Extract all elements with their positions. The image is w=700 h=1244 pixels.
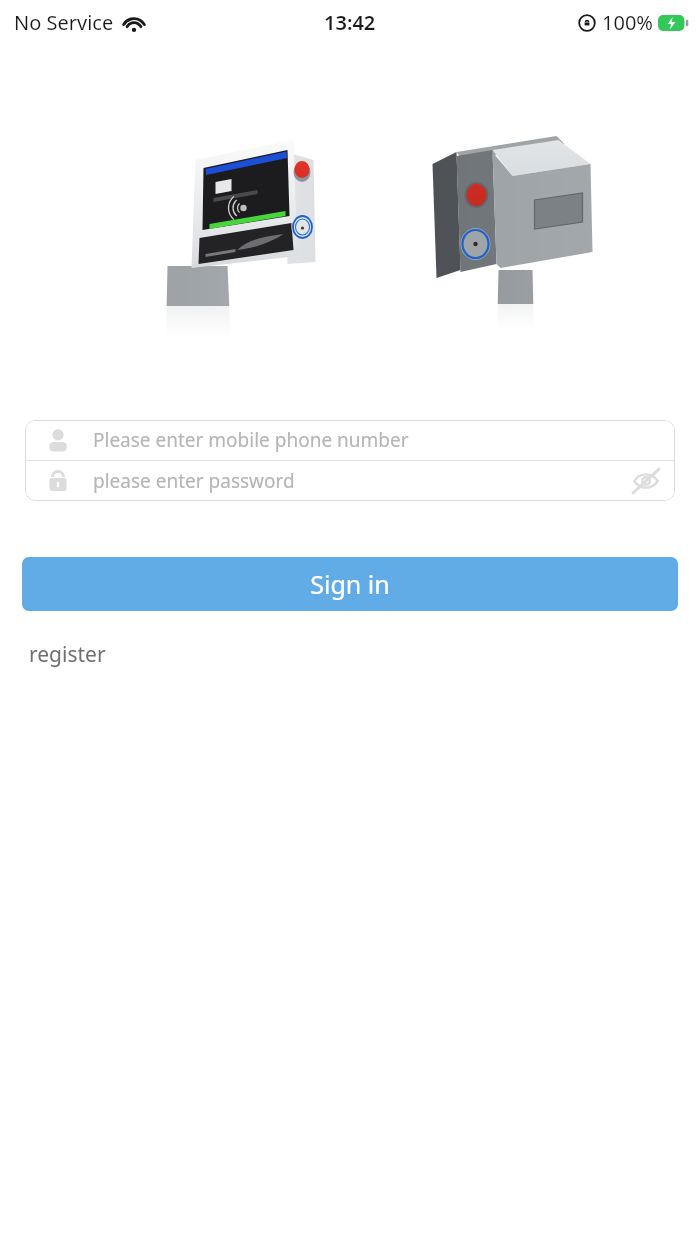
button[interactable]: please enter password xyxy=(25,461,675,501)
staticText: No Service xyxy=(14,9,114,36)
staticText: register xyxy=(29,640,106,669)
button[interactable]: Please enter mobile phone number xyxy=(25,420,675,460)
staticText: 100% xyxy=(602,9,653,36)
button[interactable]: Show password xyxy=(625,461,667,501)
button[interactable]: Sign in xyxy=(22,557,678,611)
staticText: please enter password xyxy=(93,468,625,494)
staticText: 13:42 xyxy=(324,9,376,36)
button[interactable]: register xyxy=(22,635,113,674)
staticText: Sign in xyxy=(310,567,390,601)
staticText: Please enter mobile phone number xyxy=(93,427,409,453)
